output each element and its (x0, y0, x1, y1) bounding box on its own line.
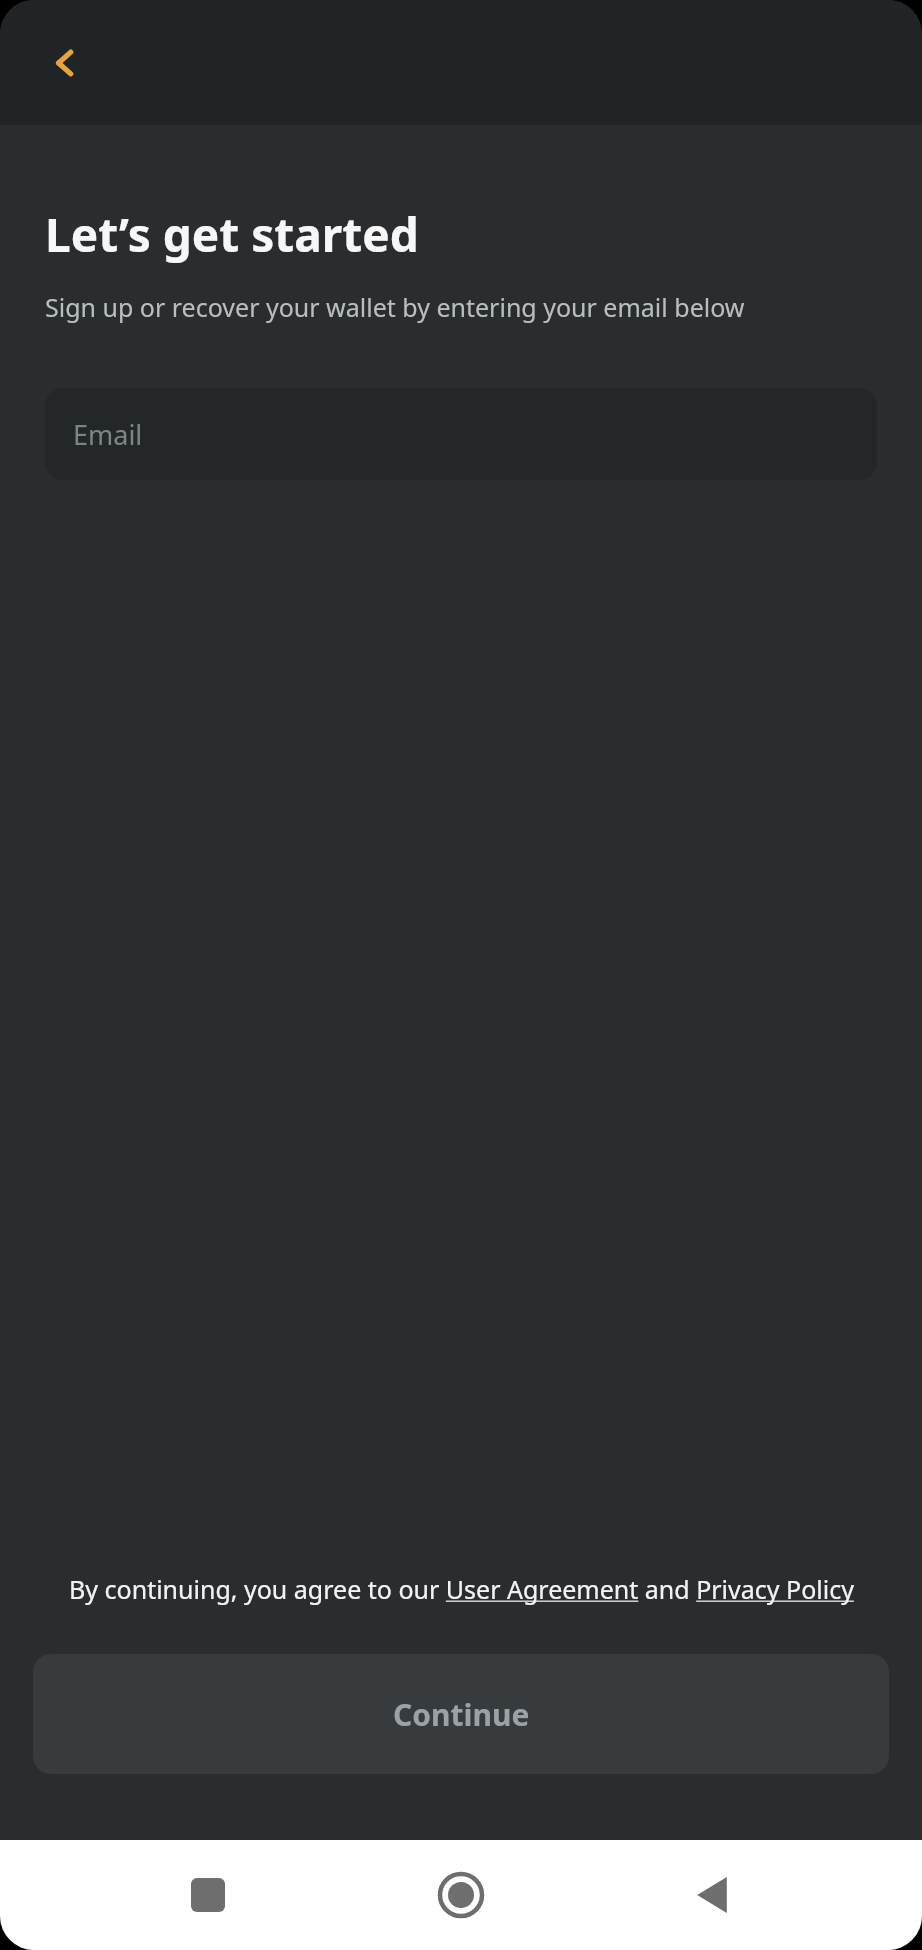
button[interactable]: Back (669, 1850, 759, 1940)
button[interactable]: Back (30, 28, 100, 98)
staticText: Continue (393, 1694, 530, 1735)
staticText: Email (73, 416, 143, 453)
button[interactable]: Email (45, 388, 877, 480)
button[interactable]: By continuing, you agree to our User Agr… (60, 1572, 862, 1606)
button[interactable]: Home (416, 1850, 506, 1940)
button[interactable]: Recent apps (163, 1850, 253, 1940)
button[interactable]: Continue (33, 1654, 889, 1774)
staticText: Let’s get started (45, 203, 419, 266)
staticText: Sign up or recover your wallet by enteri… (45, 290, 745, 324)
staticText: By continuing, you agree to our User Agr… (69, 1572, 854, 1606)
